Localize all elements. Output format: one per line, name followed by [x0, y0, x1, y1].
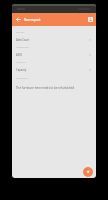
- staticText: Identity: [16, 31, 25, 34]
- button[interactable]: Appartment: [12, 43, 96, 59]
- staticText: A350: [16, 53, 23, 57]
- staticText: Category: [16, 61, 26, 64]
- staticText: The furniture here needs to be refurbish…: [16, 86, 75, 90]
- button[interactable]: Identity: [12, 28, 96, 44]
- button[interactable]: Save: [84, 13, 96, 26]
- button[interactable]: Back: [12, 13, 24, 26]
- staticText: Adra Court: [16, 38, 30, 42]
- staticText: Appartment: [16, 46, 30, 49]
- button[interactable]: Add: [83, 167, 93, 177]
- staticText: Capacity: [16, 68, 27, 72]
- staticText: New request: [24, 18, 41, 22]
- button[interactable]: Category: [12, 58, 96, 75]
- staticText: Description: [16, 77, 29, 80]
